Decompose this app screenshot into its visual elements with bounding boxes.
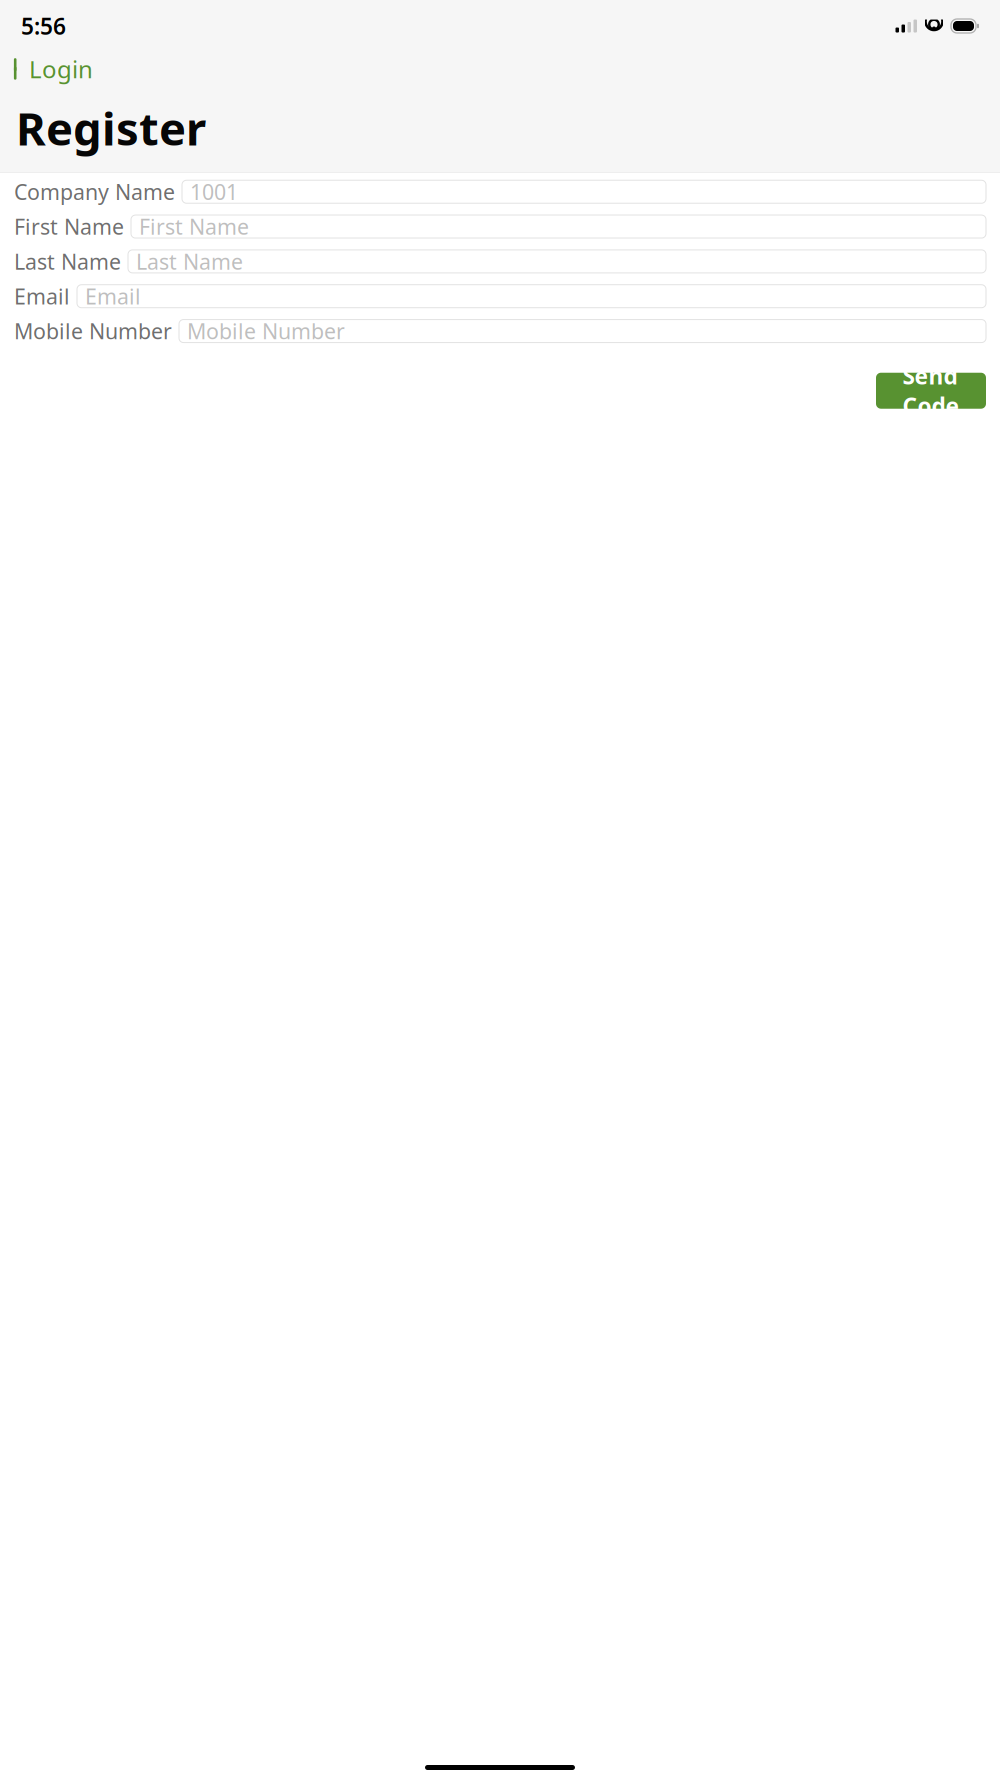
staticText: 1001 [190,178,238,206]
staticText: Email [14,282,70,310]
button[interactable]: Email [77,285,986,308]
button[interactable]: Last Name [128,250,986,273]
staticText: Mobile Number [14,317,172,345]
button[interactable]: Mobile Number [179,320,986,343]
staticText: Send Code [902,361,959,421]
staticText: Company Name [14,178,175,206]
staticText: Register [16,98,206,158]
staticText: First Name [139,212,249,241]
staticText: Last Name [136,247,243,275]
staticText: First Name [14,212,124,241]
staticText: Mobile Number [187,317,345,345]
button[interactable]: First Name [131,215,986,238]
button[interactable]: Send Code [876,373,986,409]
staticText: 5:56 [21,11,66,41]
staticText: Login [29,53,93,85]
staticText: Last Name [14,247,121,275]
button[interactable]: Login [0,50,103,88]
button[interactable]: 1001 [182,180,986,203]
staticText: Email [85,282,141,310]
